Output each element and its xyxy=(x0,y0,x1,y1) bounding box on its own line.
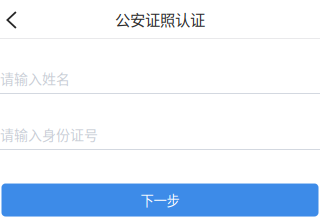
staticText: 请输入身份证号 xyxy=(0,124,98,144)
button[interactable]: ID number field xyxy=(0,124,320,150)
staticText: 下一步 xyxy=(140,190,179,210)
staticText: 公安证照认证 xyxy=(115,8,205,30)
button[interactable]: Back xyxy=(0,2,31,39)
staticText: 请输入姓名 xyxy=(0,68,70,88)
button[interactable]: Name field xyxy=(0,68,320,94)
button[interactable]: 下一步 xyxy=(1,183,318,216)
